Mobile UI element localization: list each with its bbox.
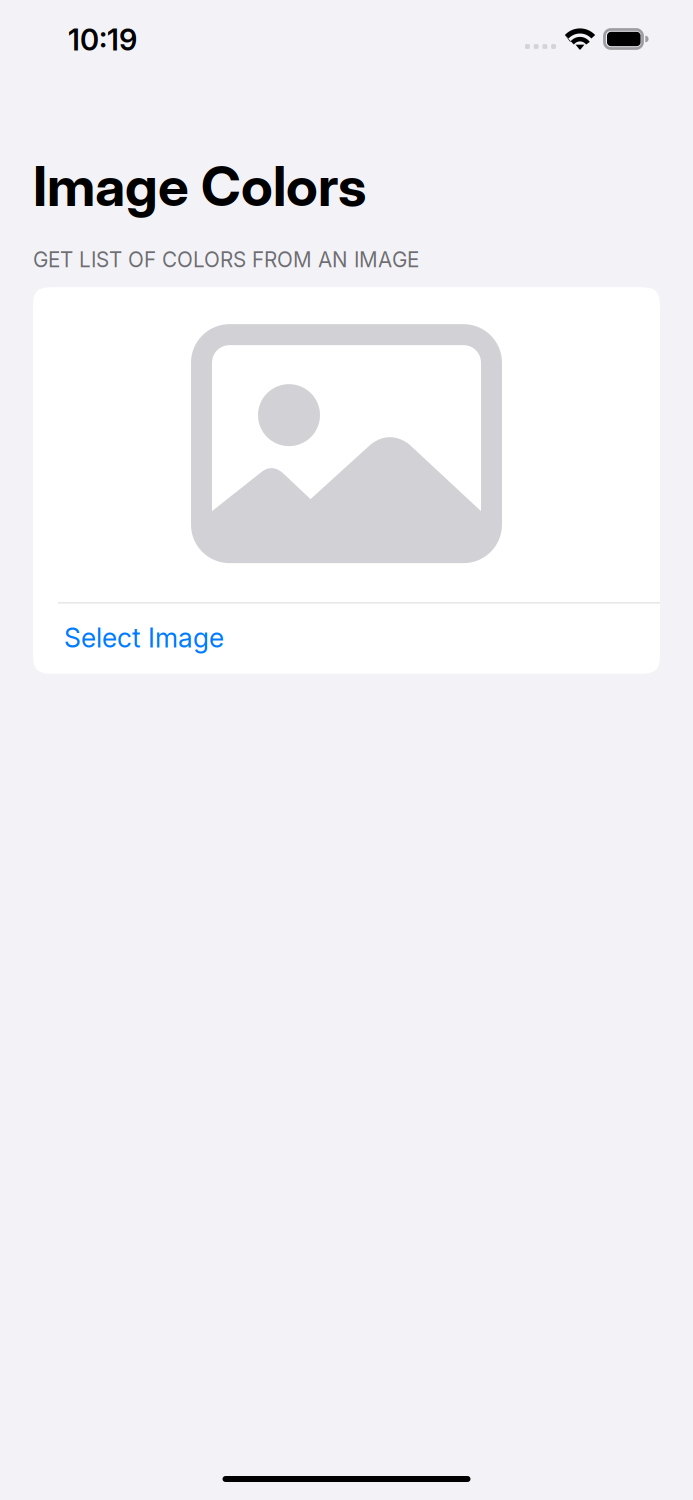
staticText: Select Image [64, 622, 224, 654]
staticText: Image Colors [33, 153, 366, 219]
staticText: GET LIST OF COLORS FROM AN IMAGE [33, 247, 419, 272]
staticText: 10:19 [68, 22, 137, 57]
button[interactable]: Select Image [33, 604, 660, 674]
